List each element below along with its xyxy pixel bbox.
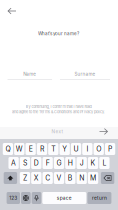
staticText: E (29, 145, 33, 153)
staticText: I (86, 145, 88, 153)
staticText: L (102, 159, 106, 167)
staticText: V (56, 174, 61, 182)
button[interactable]: Next field (97, 127, 110, 136)
staticText: X (34, 174, 39, 182)
staticText: U (73, 145, 78, 153)
staticText: What's your name? (38, 31, 79, 36)
button[interactable]: Shift (4, 172, 17, 184)
button[interactable]: F (42, 157, 53, 169)
button[interactable]: G (54, 157, 64, 169)
staticText: H (68, 159, 73, 167)
staticText: F (46, 159, 50, 167)
button[interactable]: Q (3, 143, 13, 155)
button[interactable]: U (71, 143, 81, 155)
button[interactable]: L (99, 157, 110, 169)
staticText: By continuing, I confirm that I have rea… (25, 104, 91, 109)
button[interactable]: K (88, 157, 98, 169)
button[interactable]: Next keyboard (21, 192, 31, 204)
staticText: space (57, 195, 72, 201)
staticText: Y (62, 145, 67, 153)
staticText: Name (23, 71, 36, 77)
staticText: Q (5, 145, 10, 153)
staticText: return (92, 195, 107, 201)
button[interactable]: M (88, 172, 98, 184)
button[interactable]: Z (20, 172, 30, 184)
staticText: B (68, 174, 73, 182)
staticText: D (34, 159, 39, 167)
staticText: N (79, 174, 84, 182)
staticText: Surname (74, 71, 95, 77)
staticText: O (96, 145, 101, 153)
staticText: G (56, 159, 61, 167)
button[interactable]: R (37, 143, 47, 155)
staticText: K (91, 159, 96, 167)
button[interactable]: Y (59, 143, 70, 155)
staticText: T (51, 145, 55, 153)
button[interactable]: X (31, 172, 41, 184)
staticText: P (108, 145, 112, 153)
button[interactable]: O (94, 143, 104, 155)
button[interactable]: Next (48, 127, 66, 136)
button[interactable]: Delete (101, 172, 114, 184)
button[interactable]: 123 (7, 192, 20, 204)
button[interactable]: return (87, 192, 111, 204)
button[interactable]: J (77, 157, 87, 169)
button[interactable]: C (42, 172, 53, 184)
staticText: C (45, 174, 50, 182)
staticText: J (80, 159, 84, 167)
button[interactable]: A (8, 157, 19, 169)
staticText: M (90, 174, 96, 182)
button[interactable]: T (48, 143, 58, 155)
button[interactable]: space (42, 192, 86, 204)
button[interactable]: D (31, 157, 41, 169)
button[interactable]: S (20, 157, 30, 169)
staticText: R (40, 145, 44, 153)
button[interactable]: E (25, 143, 36, 155)
button[interactable]: I (82, 143, 92, 155)
button[interactable]: Dictation (32, 192, 41, 204)
staticText: Next (51, 129, 63, 134)
staticText: 123 (9, 195, 17, 201)
button[interactable]: W (14, 143, 24, 155)
staticText: W (16, 145, 23, 153)
staticText: A (11, 159, 16, 167)
staticText: S (23, 159, 27, 167)
button[interactable]: B (65, 172, 75, 184)
staticText: and agree to the Terms & Conditions and … (12, 109, 105, 114)
button[interactable]: Back (3, 3, 21, 19)
button[interactable]: N (77, 172, 87, 184)
button[interactable]: V (54, 172, 64, 184)
staticText: Z (23, 174, 27, 182)
button[interactable]: P (105, 143, 115, 155)
button[interactable]: H (65, 157, 75, 169)
